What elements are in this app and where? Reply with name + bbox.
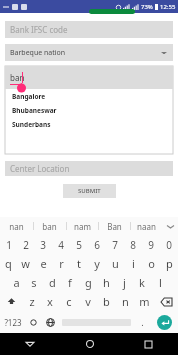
- button[interactable]: v: [78, 292, 97, 311]
- button[interactable]: Enter: [151, 311, 178, 333]
- staticText: v: [85, 294, 91, 309]
- button[interactable]: nan: [0, 217, 33, 235]
- staticText: 6: [94, 238, 100, 252]
- staticText: naan: [137, 221, 156, 232]
- button[interactable]: u: [106, 254, 124, 273]
- button[interactable]: 6: [88, 235, 106, 254]
- button[interactable]: 0: [160, 235, 178, 254]
- staticText: ban: [10, 72, 25, 83]
- button[interactable]: d: [43, 273, 61, 292]
- button[interactable]: Recent apps: [119, 333, 178, 355]
- staticText: 12:55: [160, 3, 176, 11]
- button[interactable]: 9: [142, 235, 160, 254]
- staticText: Bank IFSC code: [10, 24, 68, 35]
- staticText: 2: [23, 238, 29, 252]
- button[interactable]: Emoji: [26, 311, 41, 333]
- button[interactable]: h: [97, 273, 115, 292]
- button[interactable]: g: [79, 273, 97, 292]
- staticText: 8: [130, 238, 136, 252]
- staticText: m: [139, 294, 150, 309]
- button[interactable]: Ban: [98, 217, 130, 235]
- staticText: g: [85, 275, 92, 290]
- button[interactable]: m: [135, 292, 154, 311]
- staticText: a: [13, 275, 20, 290]
- staticText: f: [68, 275, 72, 290]
- staticText: .: [141, 316, 144, 328]
- button[interactable]: z: [23, 292, 41, 311]
- button[interactable]: 3: [34, 235, 52, 254]
- button[interactable]: a: [8, 273, 25, 292]
- button[interactable]: 1: [0, 235, 17, 254]
- button[interactable]: r: [52, 254, 70, 273]
- staticText: d: [49, 275, 56, 290]
- button[interactable]: Backspace: [154, 292, 178, 311]
- button[interactable]: ban: [5, 66, 173, 89]
- staticText: 5: [76, 238, 82, 252]
- button[interactable]: s: [25, 273, 43, 292]
- button[interactable]: nam: [66, 217, 98, 235]
- button[interactable]: i: [124, 254, 142, 273]
- button[interactable]: Change language: [41, 311, 59, 333]
- button[interactable]: x: [41, 292, 59, 311]
- button[interactable]: p: [160, 254, 178, 273]
- button[interactable]: More suggestions: [162, 217, 178, 235]
- staticText: Sunderbans: [12, 120, 51, 129]
- staticText: Barbeque nation: [10, 48, 66, 58]
- button[interactable]: SUBMIT: [63, 184, 116, 198]
- staticText: l: [159, 275, 162, 290]
- staticText: z: [29, 294, 35, 309]
- button[interactable]: Center Location: [5, 161, 173, 176]
- button[interactable]: q: [0, 254, 17, 273]
- button[interactable]: Barbeque nation: [5, 44, 173, 61]
- staticText: ban: [42, 221, 57, 232]
- button[interactable]: 8: [124, 235, 142, 254]
- staticText: SUBMIT: [78, 187, 101, 195]
- staticText: i: [132, 256, 135, 271]
- staticText: nam: [74, 221, 91, 232]
- staticText: 4: [58, 238, 64, 252]
- button[interactable]: n: [116, 292, 135, 311]
- staticText: q: [5, 256, 12, 271]
- staticText: x: [47, 294, 53, 309]
- button[interactable]: Home: [60, 333, 119, 355]
- button[interactable]: Bangalore: [5, 89, 173, 103]
- button[interactable]: w: [17, 254, 34, 273]
- staticText: j: [123, 275, 126, 290]
- staticText: Ban: [107, 221, 122, 232]
- button[interactable]: Sunderbans: [5, 117, 173, 131]
- button[interactable]: o: [142, 254, 160, 273]
- button[interactable]: t: [70, 254, 88, 273]
- staticText: k: [139, 275, 145, 290]
- button[interactable]: naan: [130, 217, 162, 235]
- button[interactable]: ?123: [0, 311, 26, 333]
- button[interactable]: Space: [59, 311, 134, 333]
- button[interactable]: 4: [52, 235, 70, 254]
- button[interactable]: Shift: [0, 292, 23, 311]
- button[interactable]: j: [115, 273, 133, 292]
- staticText: h: [103, 275, 110, 290]
- button[interactable]: Bhubaneswar: [5, 103, 173, 117]
- staticText: ?123: [4, 317, 22, 328]
- staticText: Bangalore: [12, 92, 46, 101]
- button[interactable]: .: [134, 311, 151, 333]
- button[interactable]: e: [34, 254, 52, 273]
- button[interactable]: f: [61, 273, 79, 292]
- staticText: nan: [9, 221, 24, 232]
- staticText: r: [59, 256, 64, 271]
- button[interactable]: y: [88, 254, 106, 273]
- button[interactable]: 7: [106, 235, 124, 254]
- button[interactable]: Back: [0, 333, 60, 355]
- button[interactable]: b: [97, 292, 116, 311]
- staticText: 73%: [141, 3, 153, 11]
- staticText: 3: [40, 238, 46, 252]
- staticText: t: [77, 256, 81, 271]
- button[interactable]: c: [59, 292, 78, 311]
- button[interactable]: 2: [17, 235, 34, 254]
- staticText: p: [166, 256, 173, 271]
- button[interactable]: l: [151, 273, 169, 292]
- button[interactable]: k: [133, 273, 151, 292]
- button[interactable]: Bank IFSC code: [5, 21, 173, 38]
- button[interactable]: 5: [70, 235, 88, 254]
- button[interactable]: ban: [33, 217, 66, 235]
- staticText: Bhubaneswar: [12, 106, 57, 115]
